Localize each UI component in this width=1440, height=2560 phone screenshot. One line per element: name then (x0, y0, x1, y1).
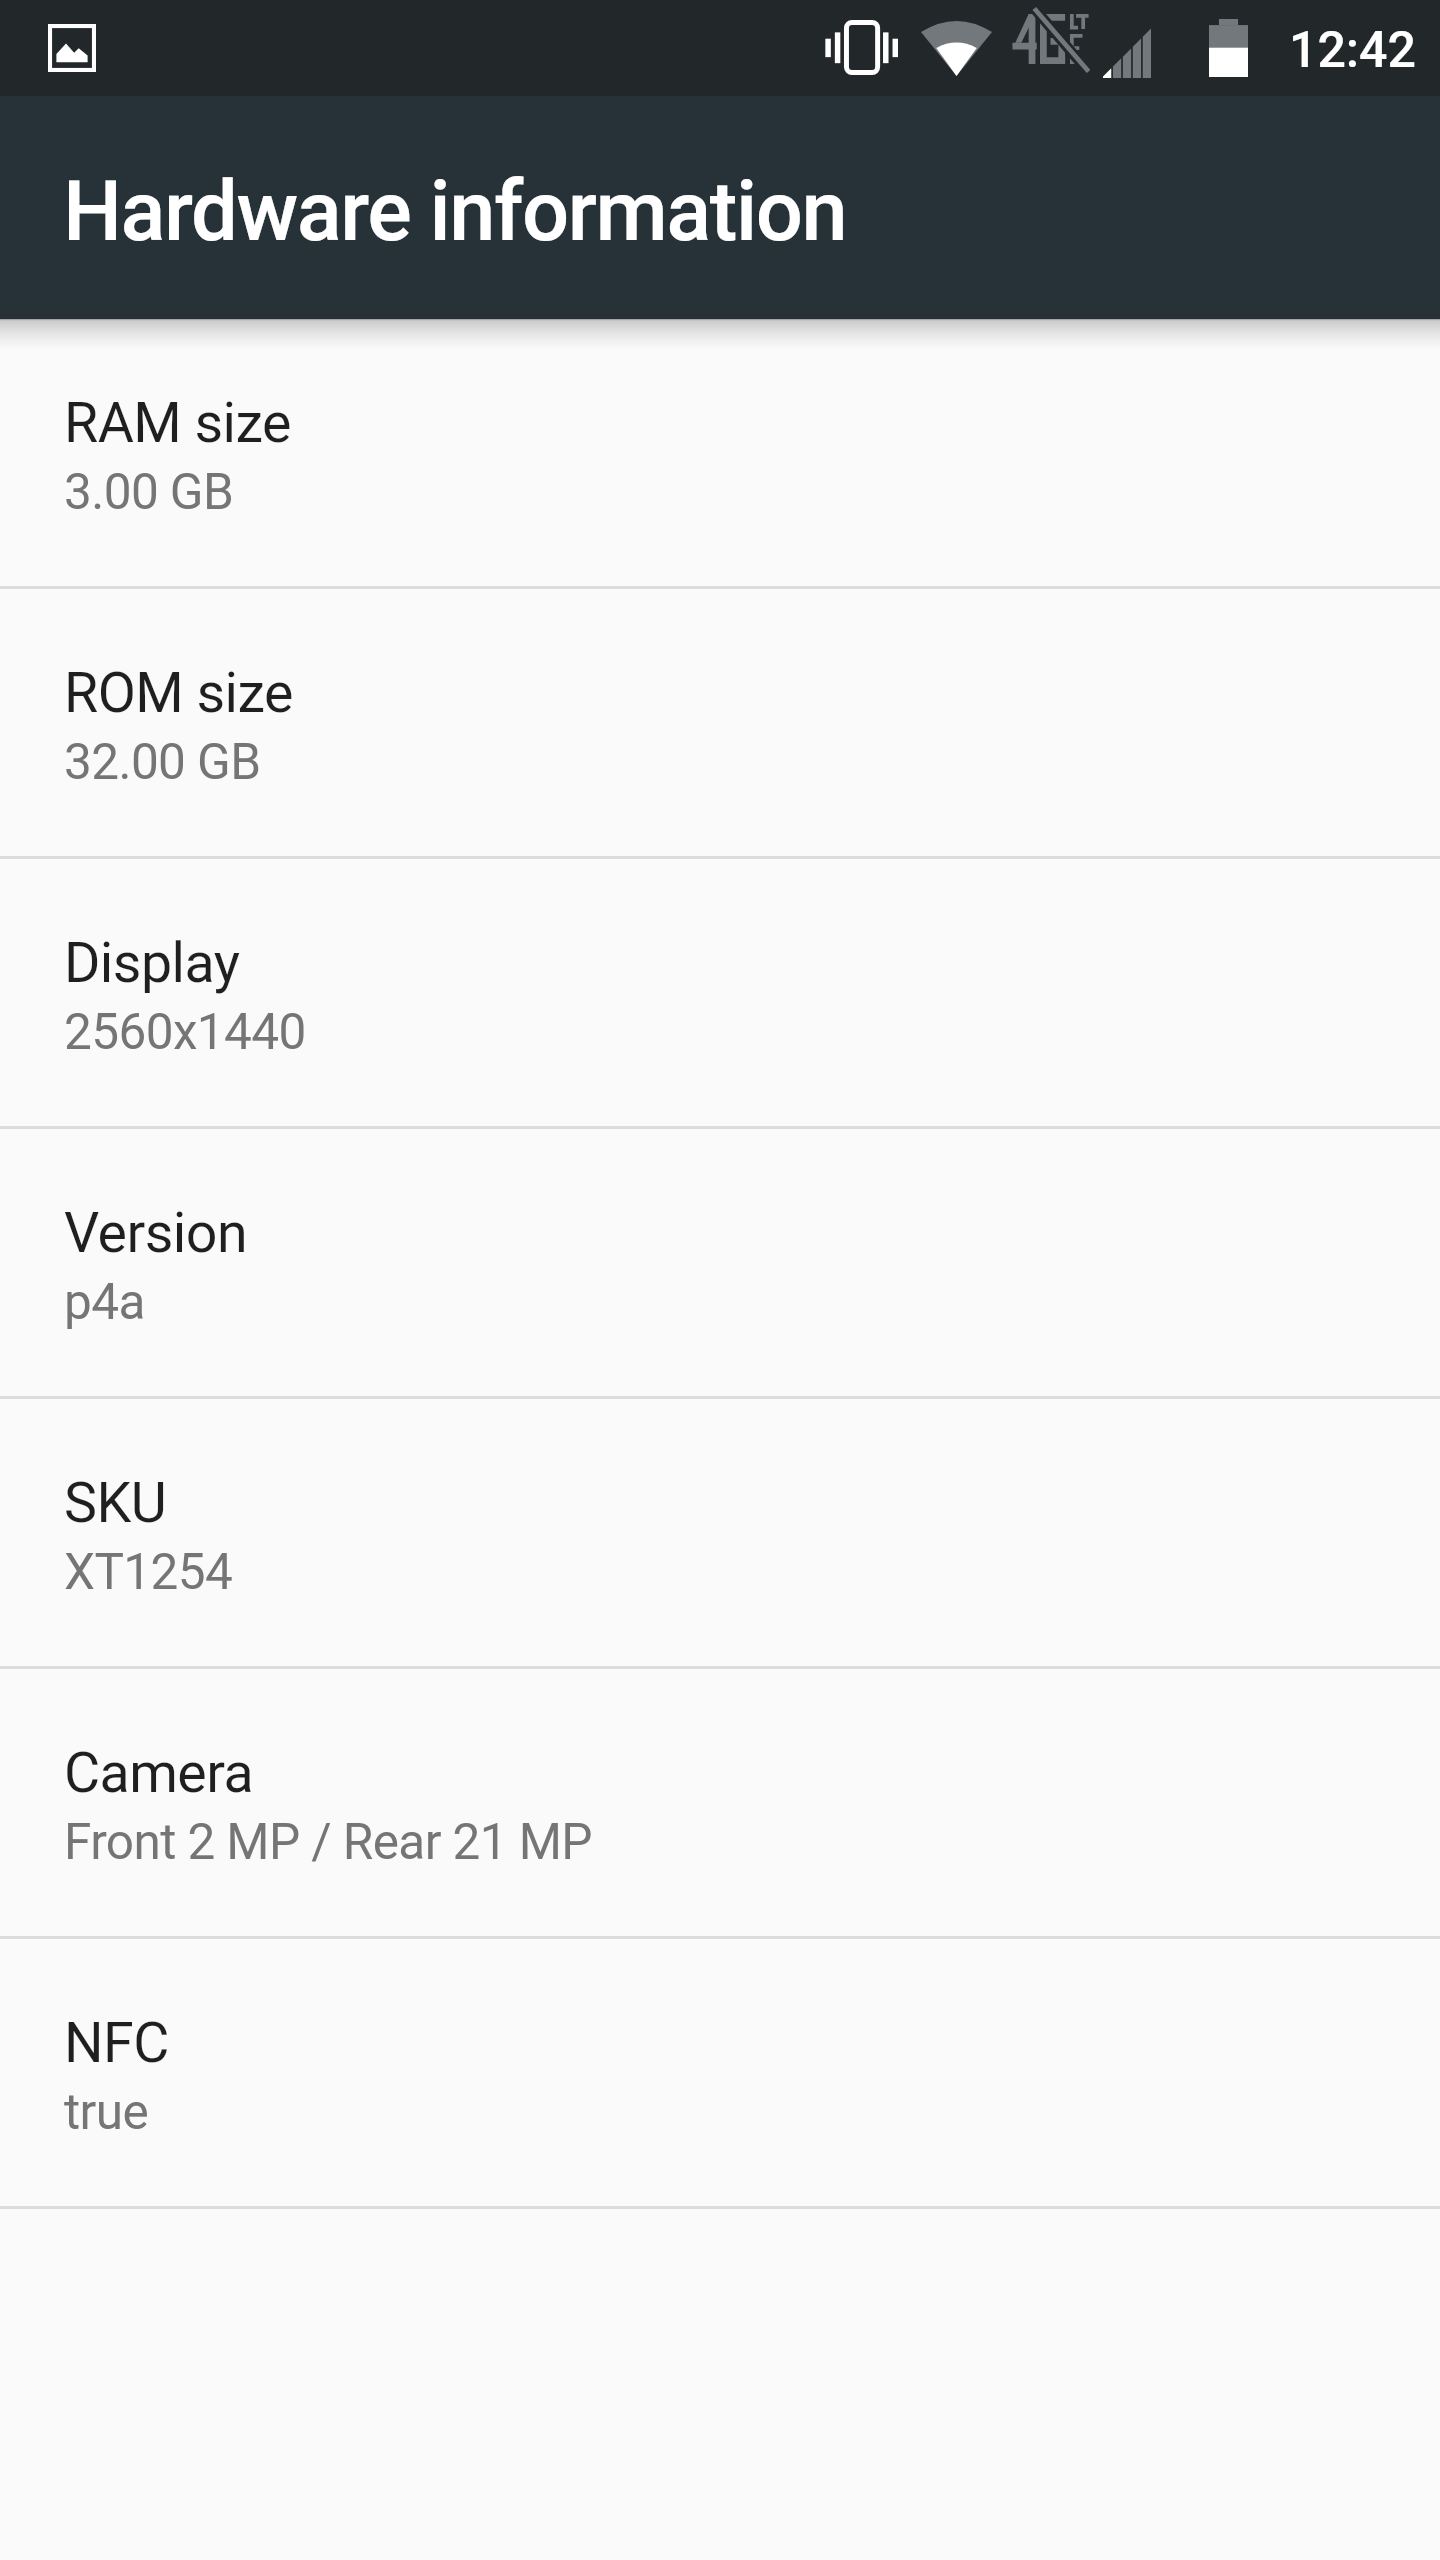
button[interactable]: SKU (0, 1399, 1440, 1666)
other: 4G LTE off (1008, 14, 1089, 64)
other: Battery 50 percent (1209, 19, 1248, 77)
staticText: Version (64, 1201, 247, 1266)
staticText: ROM size (64, 661, 293, 726)
staticText: XT1254 (64, 1543, 233, 1601)
button[interactable]: NFC (0, 1939, 1440, 2206)
staticText: Camera (64, 1741, 254, 1806)
other: Ringer set to vibrate (825, 20, 898, 75)
staticText: 3.00 GB (64, 463, 234, 521)
button[interactable]: Display (0, 859, 1440, 1126)
other: Screenshot notification (48, 24, 96, 72)
button[interactable]: RAM size (0, 319, 1440, 586)
staticText: 2560x1440 (64, 1003, 306, 1061)
button[interactable]: Camera (0, 1669, 1440, 1936)
button[interactable]: Version (0, 1129, 1440, 1396)
other: Mobile signal strength (1103, 30, 1151, 78)
button[interactable]: ROM size (0, 589, 1440, 856)
staticText: NFC (64, 2011, 169, 2076)
staticText: true (64, 2083, 149, 2141)
staticText: 12:42 (1289, 21, 1416, 80)
staticText: SKU (64, 1471, 167, 1536)
other: Wi-Fi signal (921, 20, 992, 76)
staticText: Display (64, 931, 240, 996)
staticText: p4a (64, 1273, 145, 1331)
staticText: Hardware information (63, 163, 847, 260)
staticText: Front 2 MP / Rear 21 MP (64, 1813, 592, 1871)
staticText: 32.00 GB (64, 733, 261, 791)
staticText: RAM size (64, 391, 291, 456)
